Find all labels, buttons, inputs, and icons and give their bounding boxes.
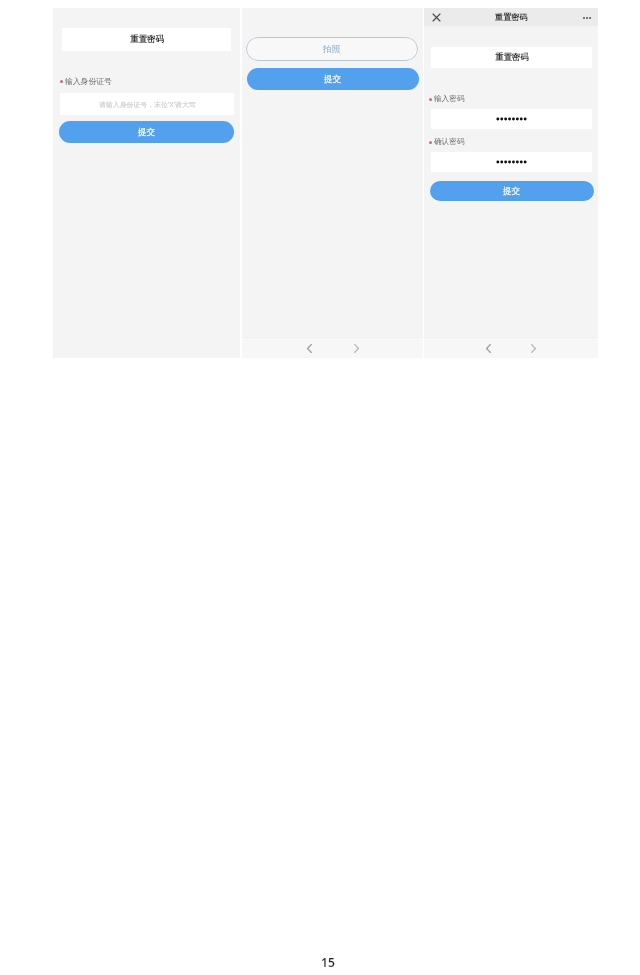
- staticText: 拍照: [323, 44, 341, 55]
- button[interactable]: 提交: [247, 68, 419, 90]
- button[interactable]: [431, 109, 592, 129]
- button[interactable]: 请输入身份证号，末位'X'请大写: [60, 93, 234, 115]
- staticText: 提交: [324, 74, 342, 85]
- button[interactable]: Forward: [349, 341, 364, 356]
- staticText: 重置密码: [495, 12, 528, 22]
- button[interactable]: Back: [481, 341, 496, 356]
- staticText: 提交: [138, 127, 156, 138]
- button[interactable]: 拍照: [246, 37, 418, 61]
- button[interactable]: 提交: [59, 121, 234, 143]
- staticText: 请输入身份证号，末位'X'请大写: [99, 100, 196, 109]
- button[interactable]: 提交: [430, 181, 594, 201]
- button[interactable]: Back: [302, 341, 317, 356]
- button[interactable]: More options: [579, 11, 595, 24]
- staticText: 提交: [503, 186, 521, 197]
- button[interactable]: 重置密码: [431, 47, 592, 68]
- staticText: 重置密码: [495, 52, 529, 63]
- staticText: 重置密码: [130, 34, 164, 45]
- staticText: 输入身份证号: [65, 76, 112, 86]
- button[interactable]: [431, 152, 592, 172]
- button[interactable]: Close: [430, 11, 443, 24]
- staticText: 输入密码: [434, 94, 465, 104]
- staticText: 确认密码: [434, 137, 465, 147]
- button[interactable]: 重置密码: [62, 28, 231, 51]
- staticText: 15: [321, 954, 335, 970]
- button[interactable]: Forward: [526, 341, 541, 356]
